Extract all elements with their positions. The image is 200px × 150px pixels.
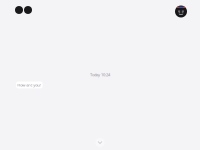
button[interactable]: Profile xyxy=(175,5,187,17)
staticText: Today 10:24 xyxy=(90,72,110,77)
button[interactable]: Scroll to bottom xyxy=(95,138,104,147)
button[interactable]: Menu xyxy=(15,6,32,14)
button[interactable]: How are you? xyxy=(16,81,43,88)
staticText: How are you? xyxy=(17,82,41,88)
